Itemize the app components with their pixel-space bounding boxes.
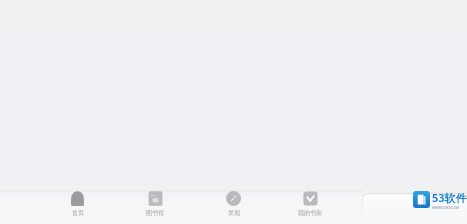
staticText: 我的书架 bbox=[298, 209, 322, 217]
staticText: 发现 bbox=[228, 209, 240, 217]
staticText: WWW.53KF.COM bbox=[432, 205, 460, 209]
button[interactable]: Library bbox=[132, 188, 178, 224]
staticText: 53软件园 bbox=[432, 190, 467, 205]
staticText: 首页 bbox=[72, 209, 84, 217]
button[interactable]: Home bbox=[54, 188, 100, 224]
staticText: 图书馆 bbox=[146, 209, 164, 217]
button[interactable]: My Shelf bbox=[287, 188, 333, 224]
button[interactable]: Discover bbox=[210, 188, 256, 224]
